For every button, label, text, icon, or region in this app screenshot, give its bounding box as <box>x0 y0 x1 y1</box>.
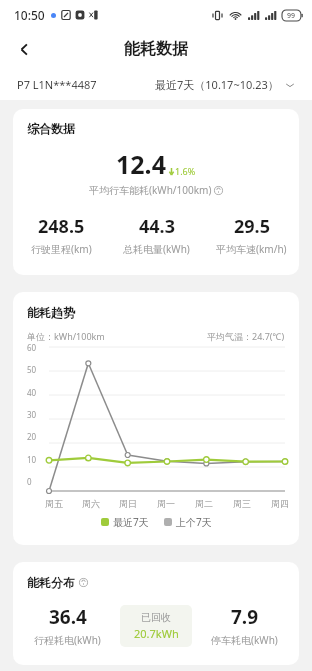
button[interactable]: 248.5 <box>13 214 109 256</box>
staticText: 行驶里程(km) <box>31 242 92 256</box>
button[interactable]: 44.3 <box>109 214 204 256</box>
staticText: 能耗分布 <box>27 575 75 590</box>
staticText: 平均气温：24.7(℃) <box>207 330 285 342</box>
staticText: 40 <box>27 387 37 397</box>
staticText: 行程耗电(kWh) <box>34 633 101 647</box>
staticText: 平均行车能耗(kWh/100km) <box>89 183 212 197</box>
staticText: 周一 <box>157 498 175 509</box>
staticText: 99 <box>287 11 296 21</box>
staticText: 平均车速(km/h) <box>216 242 287 256</box>
staticText: 29.5 <box>234 214 270 239</box>
staticText: 20 <box>27 431 37 441</box>
staticText: 周三 <box>233 498 251 509</box>
button[interactable]: 最近7天 <box>101 515 149 529</box>
staticText: 单位：kWh/100km <box>27 330 105 342</box>
staticText: 44.3 <box>139 214 175 239</box>
staticText: 已回收 <box>141 611 171 624</box>
button[interactable]: Back <box>7 32 41 66</box>
staticText: 最近7天 <box>113 515 149 529</box>
staticText: 能耗趋势 <box>27 305 75 320</box>
staticText: P7 L1N***4487 <box>17 77 97 92</box>
staticText: 周四 <box>271 498 289 509</box>
staticText: 50 <box>27 364 37 374</box>
staticText: 总耗电量(kWh) <box>123 242 190 256</box>
staticText: 0 <box>27 476 32 486</box>
staticText: 60 <box>27 342 37 352</box>
staticText: 1.6% <box>175 165 196 177</box>
staticText: 248.5 <box>38 214 85 239</box>
staticText: 10 <box>27 454 37 464</box>
button[interactable]: P7 L1N***4487 <box>17 77 97 92</box>
staticText: 36.4 <box>49 604 87 630</box>
staticText: 上个7天 <box>176 515 212 529</box>
staticText: 10:50 <box>14 7 45 23</box>
staticText: 30 <box>27 409 37 419</box>
staticText: 周二 <box>195 498 213 509</box>
staticText: 周五 <box>45 498 63 509</box>
staticText: 周日 <box>119 498 137 509</box>
staticText: 综合数据 <box>27 121 75 136</box>
staticText: 最近7天（10.17~10.23） <box>155 77 279 92</box>
button[interactable]: 29.5 <box>204 214 299 256</box>
staticText: 周六 <box>82 498 100 509</box>
button[interactable]: 最近7天（10.17~10.23） <box>155 77 295 92</box>
staticText: 12.4 <box>116 147 166 181</box>
button[interactable]: 上个7天 <box>164 515 212 529</box>
staticText: 能耗数据 <box>124 39 188 59</box>
staticText: 停车耗电(kWh) <box>211 633 278 647</box>
staticText: 20.7kWh <box>134 626 179 641</box>
staticText: 7.9 <box>231 604 259 630</box>
